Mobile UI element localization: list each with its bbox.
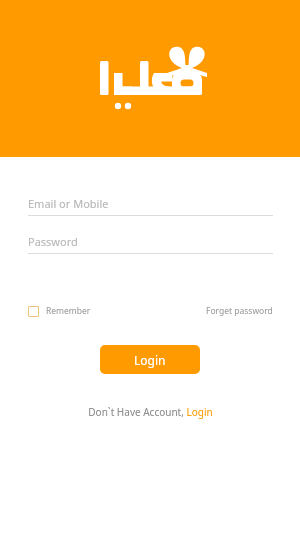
button[interactable]: Email or Mobile — [28, 195, 273, 216]
staticText: Remember — [46, 305, 91, 317]
staticText: Don`t Have Account, Login — [88, 405, 213, 419]
button[interactable]: Login — [100, 345, 200, 374]
other: Hadaya logo — [80, 43, 220, 115]
staticText: Email or Mobile — [28, 196, 109, 211]
staticText: Forget password — [206, 305, 273, 317]
button[interactable]: Remember — [28, 302, 91, 320]
staticText: Login — [134, 352, 166, 368]
staticText: Password — [28, 234, 78, 249]
button[interactable]: Forget password — [206, 302, 273, 320]
button[interactable]: Don`t Have Account, Login — [80, 401, 221, 423]
button[interactable]: Password — [28, 233, 273, 254]
